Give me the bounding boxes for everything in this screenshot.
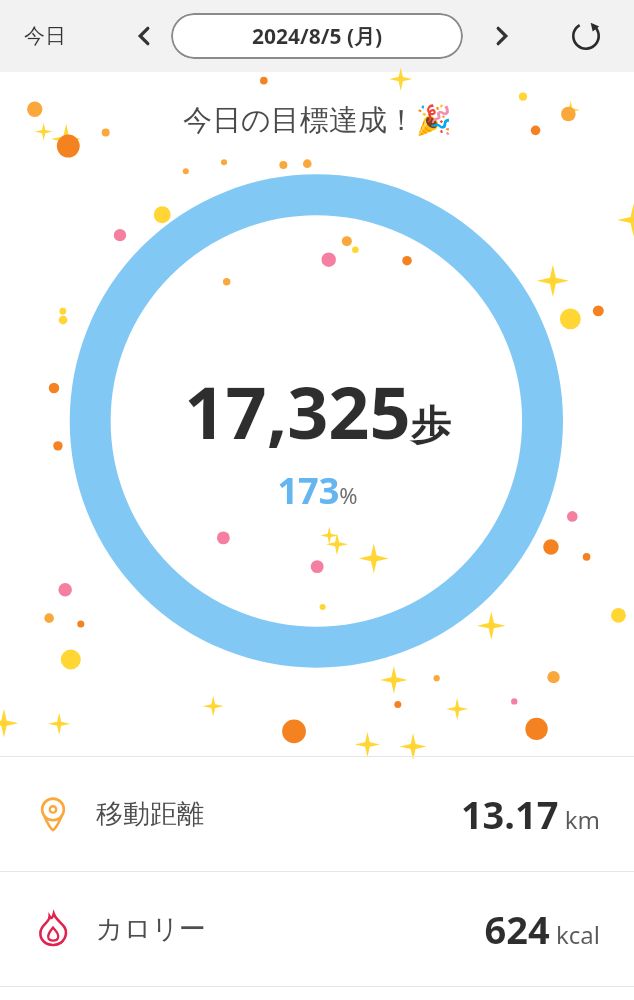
button[interactable]: 移動距離 <box>0 757 634 871</box>
button[interactable]: 今日 <box>24 23 66 49</box>
staticText: カロリー <box>96 912 206 946</box>
staticText: 17,325歩 <box>184 362 451 460</box>
button[interactable]: 2024/8/5 (月) <box>171 13 463 59</box>
button[interactable]: Refresh <box>564 14 608 58</box>
staticText: 2024/8/5 (月) <box>252 22 383 51</box>
staticText: 173% <box>277 466 358 515</box>
staticText: 移動距離 <box>96 797 204 831</box>
staticText: 624 kcal <box>484 903 600 955</box>
button[interactable]: Previous day <box>124 16 164 56</box>
staticText: 13.17 km <box>460 788 600 840</box>
staticText: 今日の目標達成！🎉 <box>183 102 452 139</box>
button[interactable]: カロリー <box>0 872 634 986</box>
button[interactable]: Next day <box>482 16 522 56</box>
